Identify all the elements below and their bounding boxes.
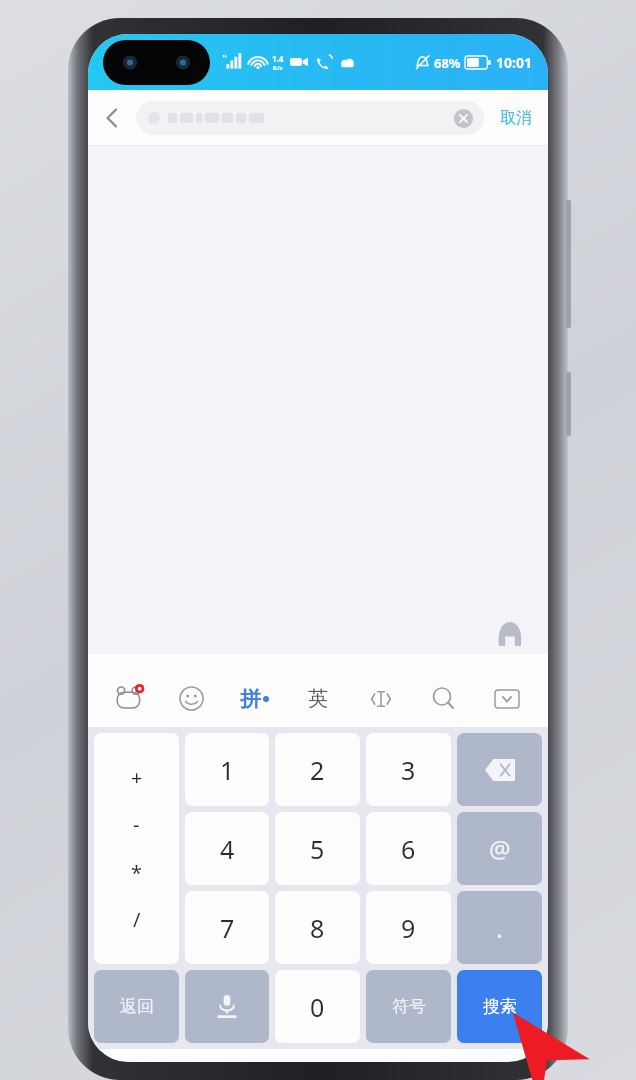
button[interactable]: 6: [366, 812, 451, 885]
staticText: 3: [401, 753, 416, 787]
button[interactable]: 5: [275, 812, 360, 885]
button[interactable]: Voice input: [185, 970, 269, 1043]
button[interactable]: Clear: [136, 101, 484, 135]
staticText: *: [131, 859, 143, 886]
staticText: 6: [401, 832, 416, 866]
staticText: 68%: [434, 54, 461, 72]
button[interactable]: Hide keyboard: [475, 670, 538, 727]
button[interactable]: +: [94, 733, 179, 964]
button[interactable]: Search: [412, 670, 475, 727]
staticText: 搜索: [483, 996, 517, 1017]
button[interactable]: .: [457, 891, 542, 964]
button[interactable]: Cursor keys: [349, 670, 412, 727]
staticText: .: [496, 910, 503, 945]
button[interactable]: 3: [366, 733, 451, 806]
button[interactable]: Emoji: [160, 670, 223, 727]
button[interactable]: 4: [185, 812, 269, 885]
staticText: +: [131, 764, 143, 791]
button[interactable]: 1: [185, 733, 269, 806]
staticText: 10:01: [496, 53, 532, 72]
staticText: 1.4: [272, 53, 284, 64]
staticText: 返回: [120, 996, 154, 1017]
staticText: 7: [220, 911, 235, 945]
staticText: 0: [310, 990, 325, 1024]
button[interactable]: 7: [185, 891, 269, 964]
button[interactable]: Assistant: [492, 616, 528, 652]
button[interactable]: 英: [286, 670, 349, 727]
staticText: 英: [308, 686, 328, 711]
staticText: -: [133, 811, 140, 838]
button[interactable]: @: [457, 812, 542, 885]
staticText: 1: [220, 753, 235, 787]
button[interactable]: Back: [88, 90, 136, 146]
button[interactable]: 2: [275, 733, 360, 806]
button[interactable]: 取消: [484, 90, 548, 146]
button[interactable]: 返回: [94, 970, 179, 1043]
button[interactable]: Baidu input: [98, 670, 160, 727]
button[interactable]: 0: [275, 970, 360, 1043]
staticText: K/s: [273, 64, 283, 72]
button[interactable]: 搜索: [457, 970, 542, 1043]
staticText: 4: [220, 832, 235, 866]
staticText: 拼: [240, 686, 261, 712]
staticText: @: [489, 832, 511, 865]
button[interactable]: 9: [366, 891, 451, 964]
staticText: 9: [401, 911, 416, 945]
button[interactable]: Backspace: [457, 733, 542, 806]
button[interactable]: 8: [275, 891, 360, 964]
staticText: 8: [310, 911, 325, 945]
button[interactable]: 拼: [223, 670, 286, 727]
staticText: 5: [310, 832, 325, 866]
staticText: /: [133, 906, 141, 933]
button[interactable]: 符号: [366, 970, 451, 1043]
staticText: 符号: [392, 996, 426, 1017]
button[interactable]: Clear: [450, 105, 476, 131]
staticText: 取消: [500, 108, 532, 128]
staticText: 2: [310, 753, 325, 787]
